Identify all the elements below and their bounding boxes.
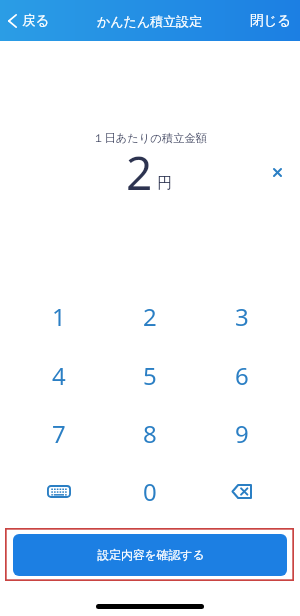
button[interactable]: 2	[104, 288, 195, 345]
button[interactable]: 5	[104, 347, 195, 404]
button[interactable]: 1	[13, 288, 104, 345]
staticText: １日あたりの積立金額	[93, 131, 208, 145]
button[interactable]: 8	[104, 405, 195, 462]
staticText: 9	[235, 417, 249, 450]
staticText: 2	[143, 300, 157, 333]
staticText: 1	[52, 300, 66, 333]
button[interactable]: 3	[196, 288, 287, 345]
button[interactable]: 9	[196, 405, 287, 462]
staticText: 5	[143, 359, 157, 392]
button[interactable]: Clear amount	[267, 162, 287, 182]
button[interactable]: 0	[104, 463, 195, 520]
staticText: 設定内容を確認する	[97, 548, 205, 563]
staticText: 3	[235, 300, 249, 333]
button[interactable]: Keyboard	[13, 463, 104, 520]
button[interactable]: 閉じる	[239, 6, 300, 35]
button[interactable]: 設定内容を確認する	[13, 534, 287, 576]
staticText: 7	[52, 417, 66, 450]
staticText: 6	[235, 359, 249, 392]
button[interactable]: 戻る	[0, 7, 58, 34]
staticText: かんたん積立設定	[97, 13, 203, 29]
staticText: 戻る	[22, 12, 50, 29]
staticText: 閉じる	[250, 12, 292, 29]
button[interactable]: Backspace	[196, 463, 287, 520]
staticText: 4	[52, 359, 66, 392]
staticText: 0	[143, 475, 157, 508]
staticText: 円	[157, 174, 172, 193]
staticText: 8	[143, 417, 157, 450]
staticText: 2	[126, 141, 153, 204]
button[interactable]: 4	[13, 347, 104, 404]
button[interactable]: 6	[196, 347, 287, 404]
button[interactable]: 7	[13, 405, 104, 462]
